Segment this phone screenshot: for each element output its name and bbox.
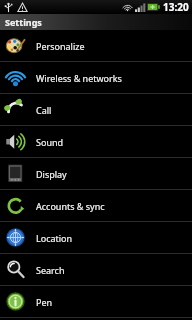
staticText: Personalize <box>36 40 85 52</box>
button[interactable]: Search <box>0 254 192 285</box>
button[interactable]: Pen <box>0 286 192 317</box>
button[interactable]: Wireless & networks <box>0 62 192 93</box>
staticText: Wireless & networks <box>36 72 122 84</box>
button[interactable]: Sound <box>0 126 192 157</box>
staticText: Display <box>36 168 67 180</box>
button[interactable]: Location <box>0 222 192 253</box>
staticText: Sound <box>36 136 64 148</box>
button[interactable]: Call <box>0 94 192 125</box>
button[interactable]: Display <box>0 158 192 189</box>
staticText: Settings <box>5 16 42 28</box>
staticText: Location <box>36 232 73 244</box>
button[interactable]: Personalize <box>0 30 192 61</box>
staticText: Call <box>36 104 52 116</box>
staticText: Pen <box>36 296 53 308</box>
button[interactable]: Accounts & sync <box>0 190 192 221</box>
staticText: 13:20 <box>163 0 189 14</box>
staticText: Accounts & sync <box>36 200 105 212</box>
staticText: Search <box>36 264 65 276</box>
